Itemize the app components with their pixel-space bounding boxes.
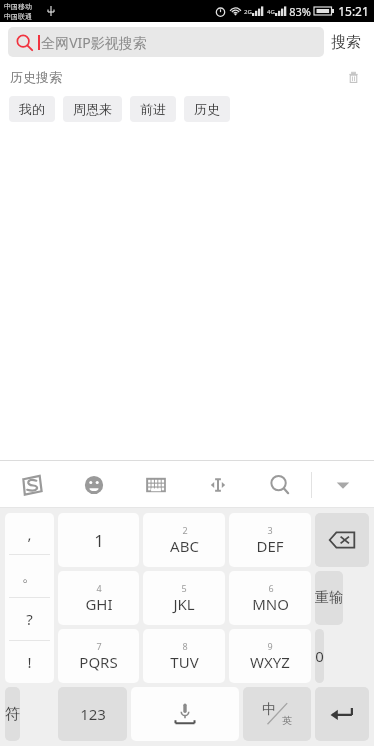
button[interactable]: 前进 (130, 96, 176, 122)
button[interactable]: Sogou input (0, 461, 63, 508)
staticText: 15:21 (338, 3, 369, 19)
button[interactable]: Enter (315, 687, 369, 741)
button[interactable]: Hide keyboard (312, 461, 374, 508)
button[interactable]: Move cursor (187, 461, 249, 508)
staticText: 。 (22, 567, 37, 586)
staticText: PQRS (79, 652, 118, 672)
staticText: DEF (256, 536, 284, 556)
button[interactable]: Backspace (315, 513, 369, 567)
staticText: 中国移动 (4, 2, 32, 11)
button[interactable]: 符 (5, 687, 20, 741)
staticText: 8 (182, 640, 188, 652)
staticText: 历史搜索 (10, 69, 62, 85)
staticText: 搜索 (331, 33, 361, 52)
staticText: 全网VIP影视搜索 (41, 33, 147, 52)
button[interactable]: 重输 (315, 571, 343, 625)
staticText: 0 (315, 646, 324, 666)
button[interactable]: Chinese English toggle (243, 687, 311, 741)
staticText: 我的 (19, 101, 45, 117)
staticText: GHI (85, 594, 113, 614)
staticText: 周恩来 (73, 101, 112, 117)
staticText: ? (26, 609, 33, 629)
button[interactable]: 5 (143, 571, 225, 625)
staticText: 1 (94, 529, 104, 552)
button[interactable]: 3 (229, 513, 311, 567)
button[interactable]: 123 (58, 687, 127, 741)
button[interactable]: Search (249, 461, 311, 508)
staticText: 中国联通 (4, 12, 32, 21)
button[interactable]: 6 (229, 571, 311, 625)
button[interactable]: Keyboard layout (125, 461, 187, 508)
staticText: 7 (96, 640, 102, 652)
staticText: 3 (267, 524, 273, 536)
staticText: 英 (282, 714, 292, 727)
button[interactable]: 我的 (9, 96, 55, 122)
button[interactable]: Clear history (342, 66, 364, 88)
button[interactable]: Space (131, 687, 239, 741)
staticText: 前进 (140, 101, 166, 117)
button[interactable]: 1 (58, 513, 139, 567)
button[interactable]: 9 (229, 629, 311, 683)
button[interactable]: 4 (58, 571, 139, 625)
staticText: 123 (80, 704, 106, 724)
button[interactable]: Emoji (63, 461, 125, 508)
button[interactable]: , (5, 513, 54, 683)
button[interactable]: 0 (315, 629, 324, 683)
button[interactable]: 7 (58, 629, 139, 683)
staticText: 历史 (194, 101, 220, 117)
staticText: 符 (5, 705, 20, 724)
staticText: ABC (170, 536, 199, 556)
staticText: 中 (262, 701, 276, 719)
button[interactable]: 全网VIP影视搜索 (8, 27, 324, 57)
button[interactable]: 历史 (184, 96, 230, 122)
staticText: JKL (173, 594, 195, 614)
staticText: ! (27, 652, 32, 672)
staticText: 重输 (315, 589, 343, 607)
staticText: 2 (182, 524, 188, 536)
staticText: 83% (289, 4, 311, 19)
staticText: , (27, 524, 32, 544)
button[interactable]: 2 (143, 513, 225, 567)
staticText: 2G (244, 8, 252, 16)
staticText: WXYZ (250, 652, 290, 672)
staticText: TUV (170, 652, 199, 672)
staticText: MNO (252, 594, 289, 614)
staticText: 4G (267, 8, 275, 16)
staticText: 9 (267, 640, 273, 652)
button[interactable]: 搜索 (331, 33, 361, 52)
button[interactable]: 周恩来 (63, 96, 122, 122)
staticText: 6 (268, 582, 274, 594)
button[interactable]: 8 (143, 629, 225, 683)
staticText: 5 (181, 582, 187, 594)
staticText: 4 (96, 582, 102, 594)
